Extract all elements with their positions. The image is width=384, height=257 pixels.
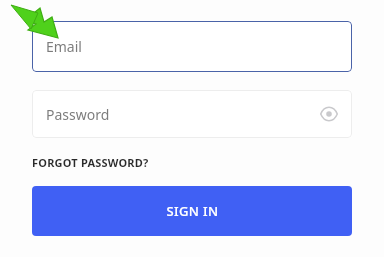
staticText: SIGN IN [166,202,219,220]
button[interactable]: SIGN IN [32,186,352,236]
button[interactable]: FORGOT PASSWORD? [32,155,149,170]
staticText: Password [46,105,110,124]
staticText: Email [46,37,82,56]
staticText: FORGOT PASSWORD? [32,155,149,170]
button[interactable]: Show password [316,101,342,127]
button[interactable]: Email [32,21,352,72]
button[interactable]: Password [32,90,352,138]
